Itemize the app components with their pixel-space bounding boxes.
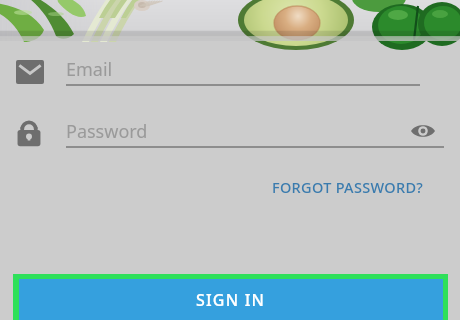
button[interactable]: Password xyxy=(0,102,460,164)
other: Email xyxy=(16,60,44,84)
button[interactable]: Email xyxy=(0,41,460,102)
button[interactable]: FORGOT PASSWORD? xyxy=(270,173,426,201)
staticText: Email xyxy=(66,57,113,81)
staticText: SIGN IN xyxy=(196,289,266,311)
button[interactable]: SIGN IN xyxy=(19,279,443,320)
button[interactable]: Show password xyxy=(408,119,438,143)
staticText: FORGOT PASSWORD? xyxy=(272,177,424,197)
other: Password xyxy=(16,118,42,148)
staticText: Password xyxy=(66,119,148,143)
